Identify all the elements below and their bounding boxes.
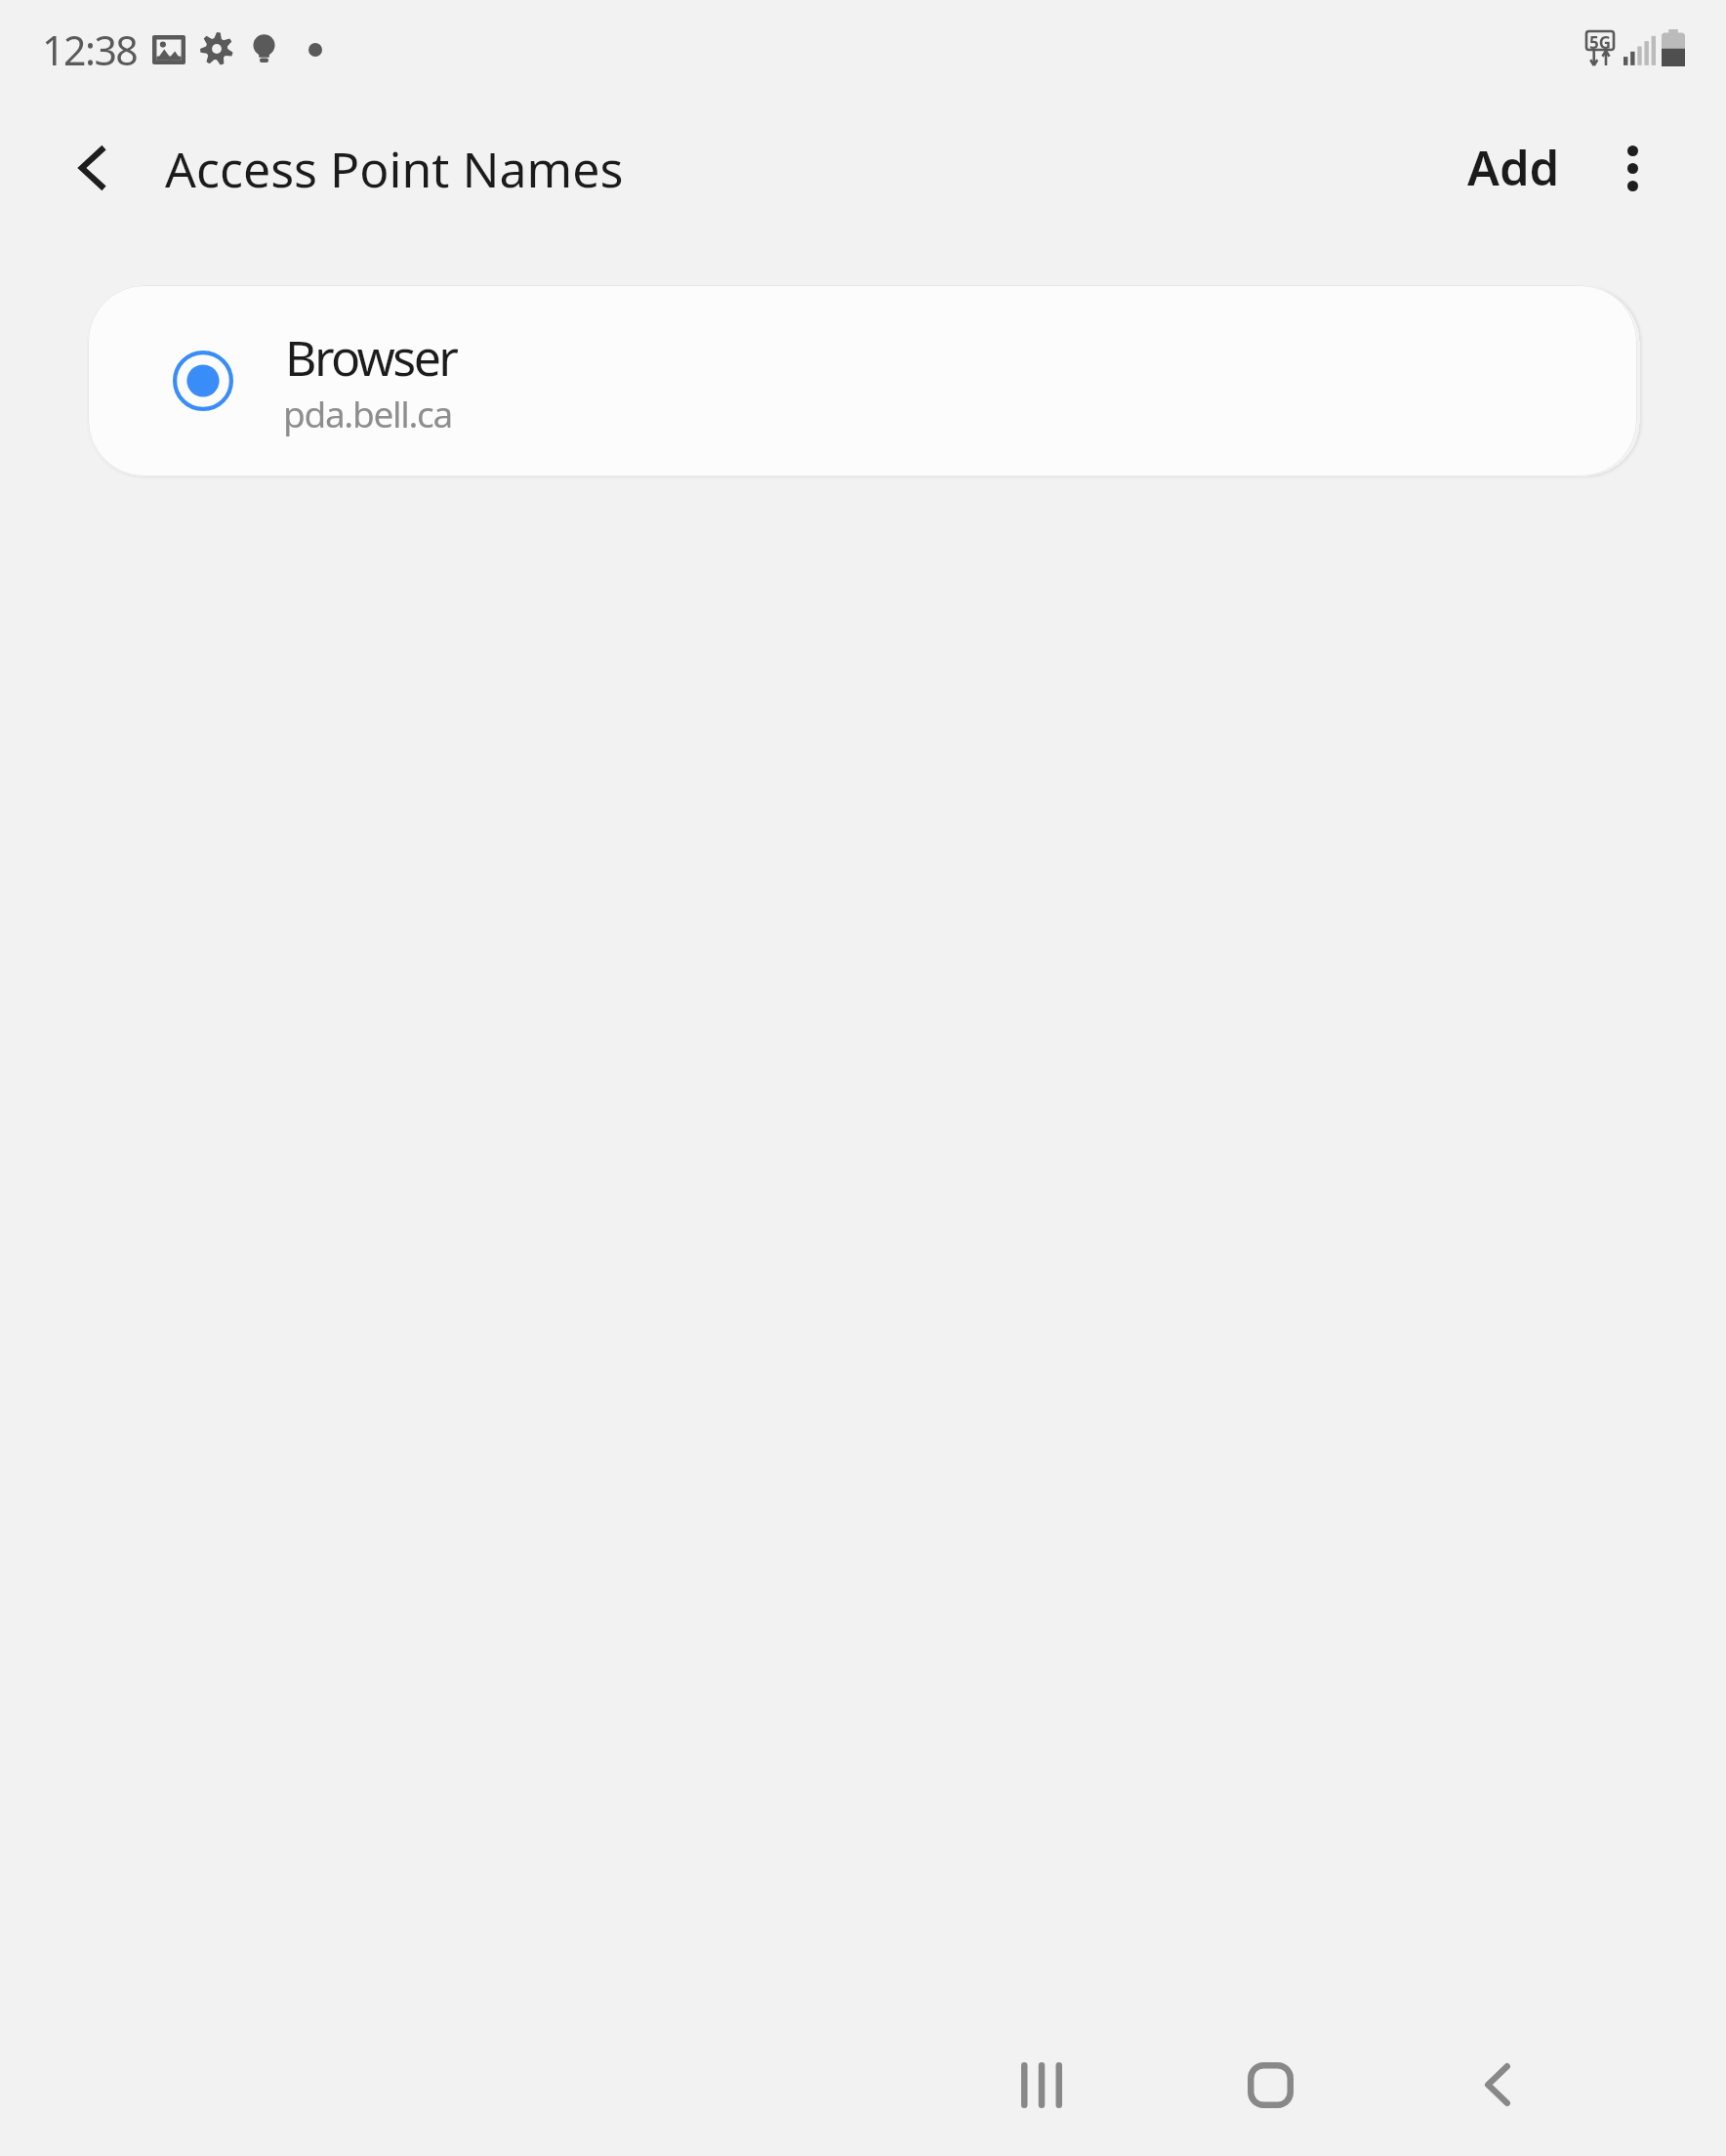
staticText: 12:38	[42, 22, 138, 77]
button[interactable]: Navigate up	[49, 125, 135, 211]
staticText: 5G	[1589, 31, 1612, 50]
staticText: pda.bell.ca	[283, 389, 453, 437]
button[interactable]: Add	[1447, 123, 1580, 211]
button[interactable]: Browser	[88, 285, 1637, 477]
button[interactable]: More options	[1589, 125, 1675, 211]
button[interactable]: Recent apps	[983, 2031, 1100, 2138]
button[interactable]: Home	[1212, 2031, 1329, 2138]
staticText: Access Point Names	[165, 136, 624, 202]
staticText: Browser	[285, 324, 457, 391]
button[interactable]: Back	[1439, 2031, 1556, 2138]
staticText: Add	[1467, 135, 1560, 200]
